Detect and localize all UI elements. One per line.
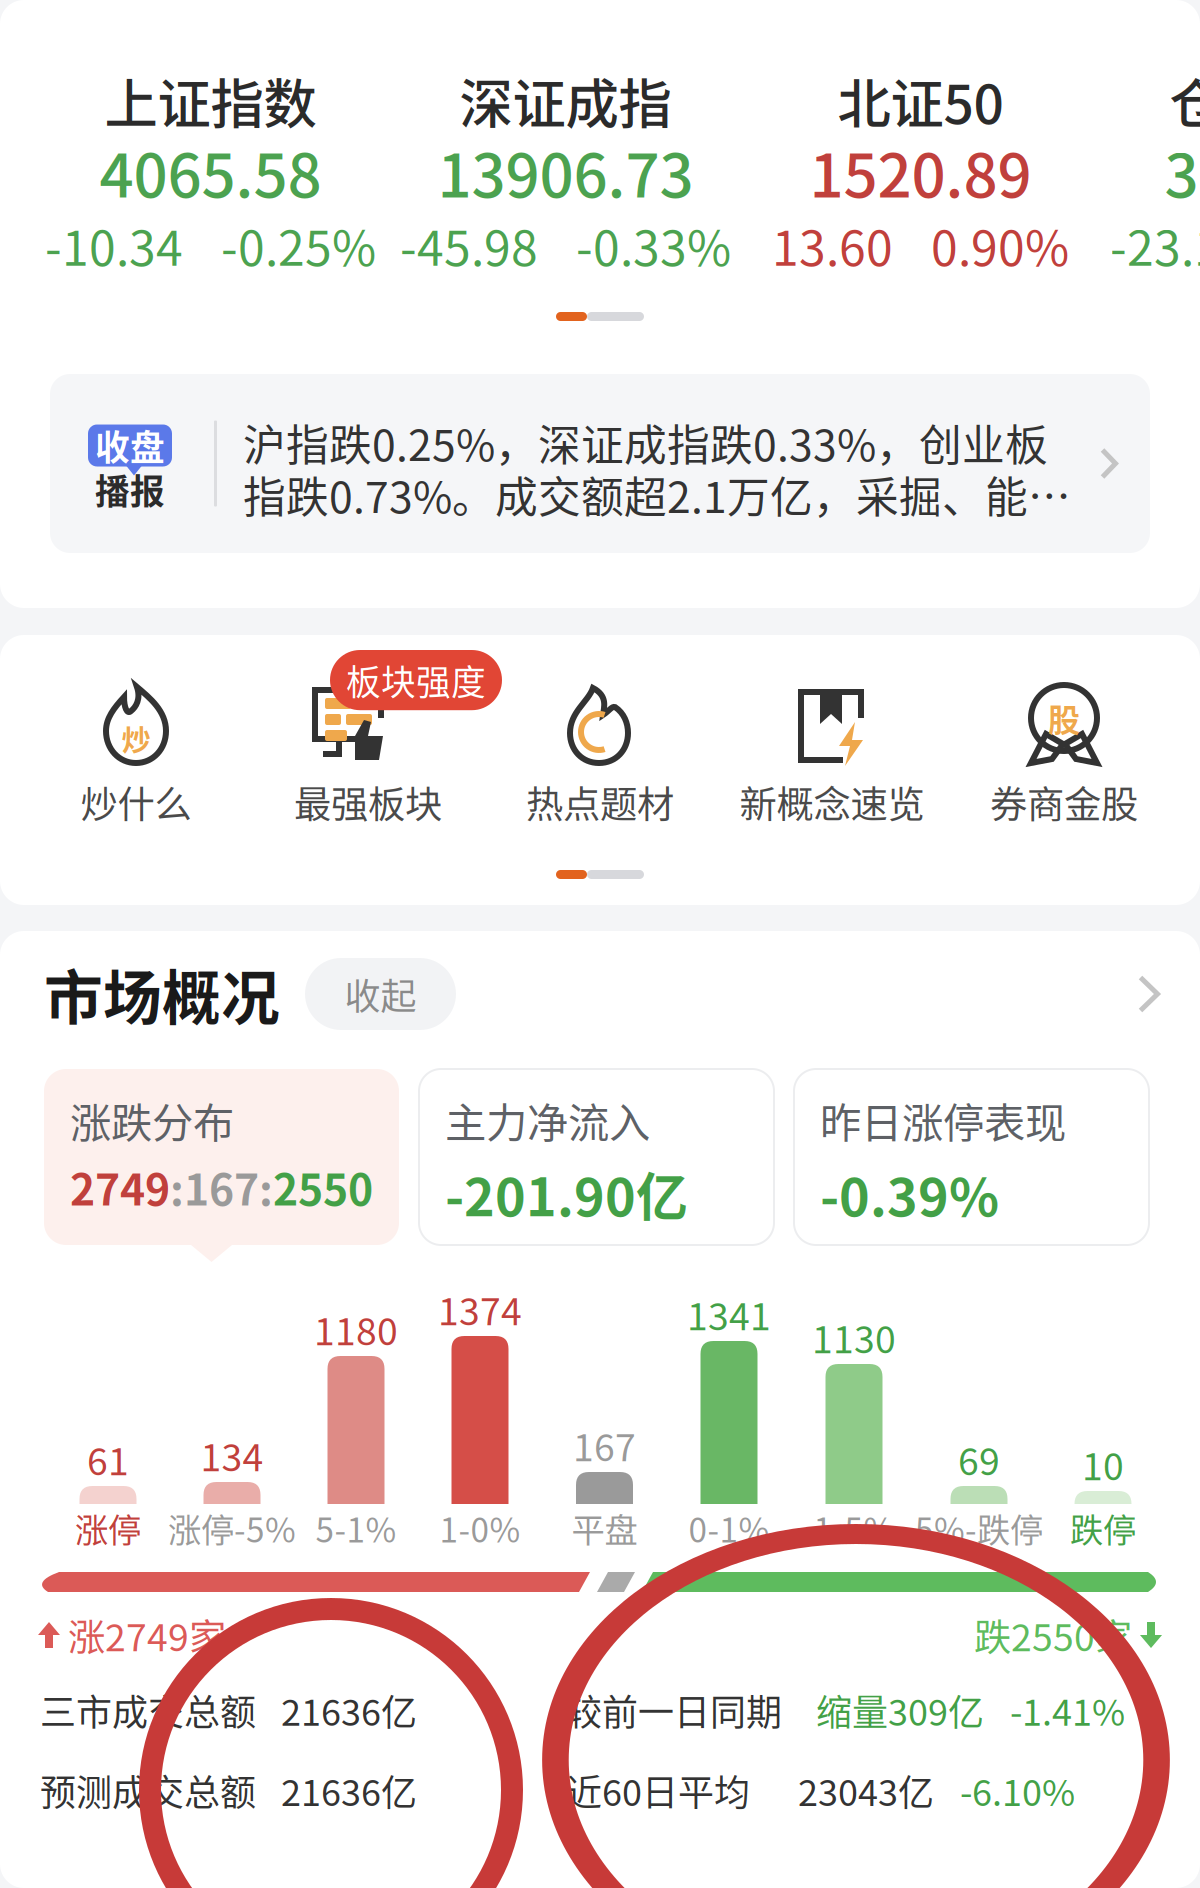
button[interactable]: 收盘 [0, 374, 1200, 553]
staticText: 5-1% [315, 1504, 396, 1552]
staticText: 涨跌分布 [70, 1090, 234, 1150]
staticText: 0.90% [931, 210, 1069, 279]
staticText: 昨日涨停表现 [820, 1090, 1066, 1150]
button[interactable]: 股 [948, 680, 1180, 832]
staticText: 指跌0.73%。成交额超2.1万亿，采掘、能… [243, 463, 1071, 525]
staticText: 北证50 [837, 62, 1003, 139]
staticText: 涨停-5% [168, 1504, 296, 1552]
staticText: 仓位参考 [1169, 62, 1200, 139]
staticText: 播报 [95, 464, 165, 514]
button[interactable]: 上证指数 [45, 62, 376, 260]
staticText: 涨2749家 [68, 1608, 226, 1662]
staticText: 市场概况 [44, 951, 280, 1036]
staticText: 1520.89 [809, 128, 1031, 215]
staticText: -10.34 [45, 210, 183, 279]
staticText: 热点题材 [526, 775, 674, 829]
staticText: -1.41% [1010, 1684, 1125, 1736]
staticText: 61 [87, 1432, 129, 1486]
staticText: 最强板块 [294, 775, 442, 829]
staticText: 板块强度 [346, 655, 486, 705]
button[interactable]: 热点题材 [484, 680, 716, 832]
staticText: 21636亿 [281, 1764, 417, 1816]
button[interactable]: 展开市场概况 [1138, 975, 1160, 1013]
staticText: 炒什么 [80, 775, 191, 829]
button[interactable]: 收起 [305, 958, 456, 1030]
staticText: 1-0% [439, 1504, 520, 1552]
staticText: 4065.58 [99, 128, 321, 215]
staticText: 股 [1048, 695, 1080, 741]
staticText: 1130 [812, 1310, 896, 1364]
staticText: 13.60 [772, 210, 893, 279]
button[interactable]: 炒 [20, 680, 252, 832]
staticText: -6.10% [960, 1764, 1075, 1816]
staticText: 深证成指 [459, 62, 671, 139]
staticText: -0.39% [820, 1156, 999, 1231]
button[interactable]: 昨日涨停表现 [794, 1069, 1149, 1245]
staticText: 预测成交总额 [40, 1764, 256, 1816]
button[interactable]: 仓位参考 [1110, 62, 1200, 260]
staticText: 5%-跌停 [915, 1504, 1043, 1552]
button[interactable]: 涨跌分布 [44, 1069, 399, 1262]
staticText: 1180 [314, 1302, 398, 1356]
staticText: 10 [1082, 1437, 1124, 1491]
staticText: 跌2550家 [974, 1608, 1132, 1662]
staticText: 1374 [438, 1282, 522, 1336]
staticText: -0.25% [221, 210, 376, 279]
staticText: 涨停 [75, 1504, 141, 1552]
staticText: 21636亿 [281, 1684, 417, 1736]
staticText: :167: [170, 1156, 273, 1218]
button[interactable]: 新概念速览 [716, 680, 948, 832]
staticText: 13906.73 [437, 128, 693, 215]
staticText: 收盘 [95, 420, 165, 471]
staticText: -23.10 [1110, 210, 1200, 279]
button[interactable]: 深证成指 [400, 62, 731, 260]
staticText: 上证指数 [104, 62, 316, 139]
staticText: 平盘 [571, 1504, 637, 1552]
staticText: -0.33% [576, 210, 731, 279]
staticText: 69 [958, 1432, 1000, 1486]
staticText: 1-5% [813, 1504, 894, 1552]
staticText: 收起 [344, 968, 416, 1020]
staticText: 主力净流入 [445, 1090, 650, 1150]
staticText: 炒 [121, 717, 150, 759]
staticText: 券商金股 [990, 775, 1138, 829]
staticText: 较前一日同期 [566, 1684, 782, 1736]
staticText: 2550 [273, 1156, 373, 1218]
staticText: 跌停 [1070, 1504, 1136, 1552]
staticText: 2749 [70, 1156, 170, 1218]
button[interactable]: 主力净流入 [419, 1069, 774, 1245]
staticText: 0-1% [688, 1504, 769, 1552]
staticText: 沪指跌0.25%，深证成指跌0.33%，创业板 [243, 411, 1048, 473]
staticText: 缩量309亿 [816, 1684, 984, 1736]
staticText: 23043亿 [798, 1764, 934, 1816]
staticText: 134 [200, 1428, 263, 1482]
staticText: 三市成交总额 [40, 1684, 256, 1736]
staticText: -45.98 [400, 210, 538, 279]
staticText: -201.90亿 [445, 1156, 688, 1231]
button[interactable]: 板块强度 [252, 680, 484, 832]
staticText: 3178.45 [1164, 128, 1200, 215]
staticText: 167 [573, 1418, 636, 1472]
staticText: 近60日平均 [566, 1764, 750, 1816]
staticText: 新概念速览 [739, 775, 924, 829]
button[interactable]: 北证50 [772, 62, 1069, 260]
staticText: 1341 [687, 1287, 771, 1341]
